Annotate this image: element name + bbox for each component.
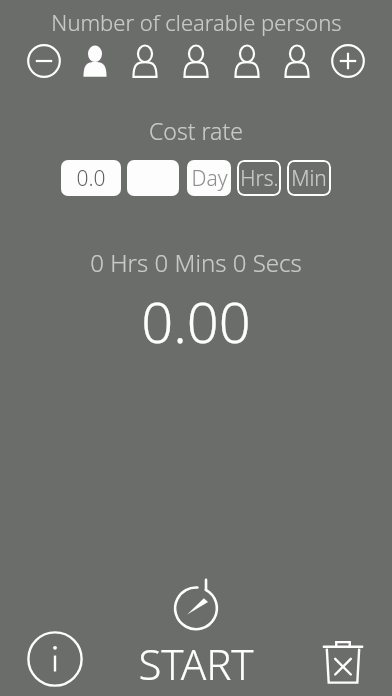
button[interactable]: Person — [279, 43, 315, 79]
button[interactable]: Person — [229, 43, 265, 79]
staticText: Day — [191, 164, 228, 193]
staticText: 0.00 — [141, 283, 251, 359]
button[interactable]: Clear — [316, 634, 370, 688]
staticText: Number of clearable persons — [51, 7, 342, 37]
button[interactable] — [127, 160, 179, 196]
staticText: Cost rate — [149, 115, 243, 146]
staticText: Hrs. — [240, 164, 279, 193]
staticText: 0 Hrs 0 Mins 0 Secs — [90, 246, 302, 279]
button[interactable]: START — [138, 577, 254, 692]
button[interactable]: 0.0 — [61, 160, 121, 196]
button[interactable]: Min — [287, 160, 331, 196]
staticText: 0.0 — [76, 164, 106, 193]
button[interactable]: Increase persons — [330, 43, 366, 79]
staticText: Min — [291, 164, 327, 193]
button[interactable]: Person selected — [77, 43, 113, 79]
button[interactable]: Info — [26, 630, 84, 688]
staticText: START — [138, 635, 254, 692]
button[interactable]: Day — [187, 160, 231, 196]
button[interactable]: Person — [178, 43, 214, 79]
button[interactable]: Decrease persons — [26, 43, 62, 79]
button[interactable]: Person — [127, 43, 163, 79]
button[interactable]: Hrs. — [237, 160, 281, 196]
